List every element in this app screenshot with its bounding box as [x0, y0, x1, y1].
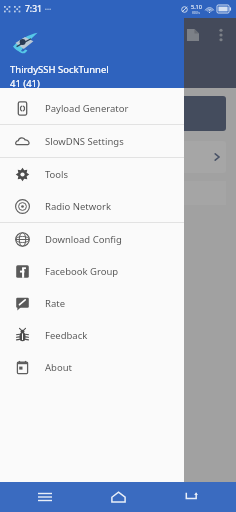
staticText: 5.10	[191, 3, 202, 10]
button[interactable]: Radio Network	[0, 190, 184, 222]
staticText: ThirdySSH SockTunnel	[10, 63, 109, 76]
button[interactable]: About	[0, 351, 184, 383]
staticText: 7:31	[25, 3, 42, 15]
staticText: Tools	[45, 168, 69, 181]
button[interactable]: Facebook Group	[0, 255, 184, 287]
staticText: About	[45, 361, 72, 374]
button[interactable]: Feedback	[0, 319, 184, 351]
staticText: Feedback	[45, 329, 88, 342]
button[interactable]: Recent apps	[17, 482, 73, 512]
button[interactable]: More options	[212, 26, 230, 44]
button[interactable]	[184, 18, 236, 482]
button[interactable]: Back	[163, 482, 219, 512]
button[interactable]: SlowDNS Settings	[0, 125, 184, 157]
button[interactable]: Home	[90, 482, 146, 512]
staticText: Rate	[45, 297, 66, 310]
staticText: Download Config	[45, 233, 122, 246]
button[interactable]	[31, 214, 105, 232]
staticText: Facebook Group	[45, 265, 119, 278]
staticText: 41 (41)	[10, 77, 40, 88]
staticText: Radio Network	[45, 200, 111, 213]
button[interactable]	[10, 96, 226, 131]
button[interactable]: Payload Generator	[0, 92, 184, 124]
button[interactable]: ThirdySSH SockTunnel	[0, 18, 184, 88]
staticText: KB/s	[192, 10, 201, 15]
staticText: SlowDNS Settings	[45, 135, 124, 148]
button[interactable]: Log file	[184, 26, 202, 44]
button[interactable]: Rate	[0, 287, 184, 319]
staticText: Payload Generator	[45, 102, 129, 115]
button[interactable]	[10, 141, 226, 173]
button[interactable]: Download Config	[0, 223, 184, 255]
button[interactable]: Tools	[0, 158, 184, 190]
